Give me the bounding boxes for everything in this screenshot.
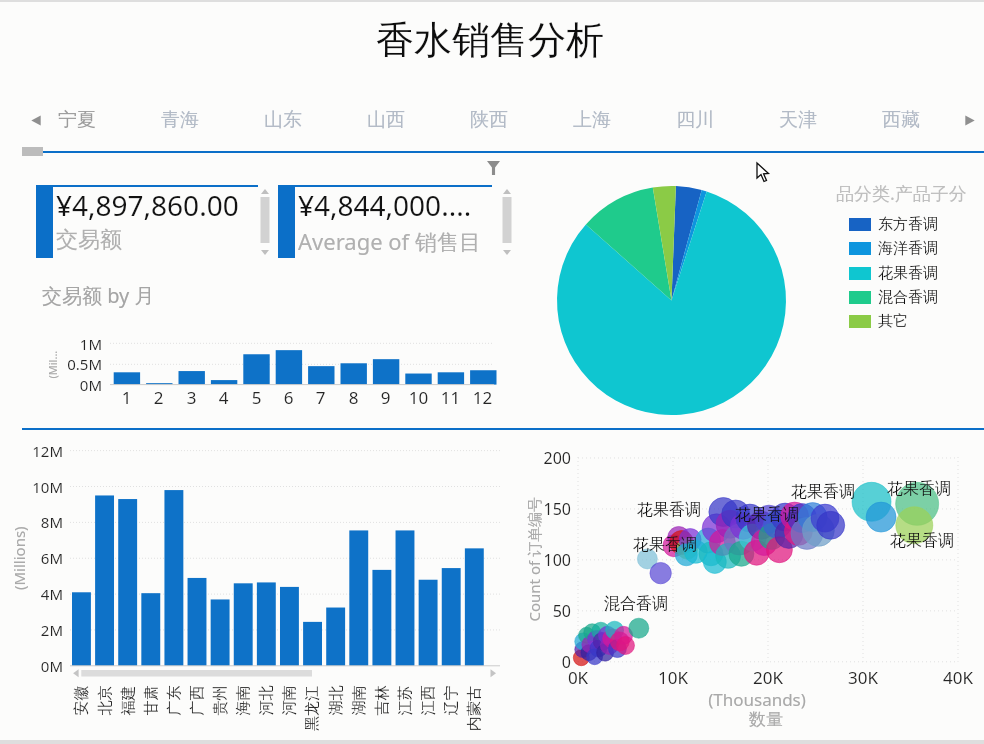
staticText: 0K — [548, 666, 608, 689]
button[interactable]: 山东 — [257, 104, 309, 136]
button[interactable]: ¥4,897,860.00 — [36, 185, 258, 258]
staticText: 50 — [511, 600, 571, 622]
staticText: 20K — [738, 666, 798, 689]
staticText: 12 — [466, 386, 499, 409]
staticText: 0M — [42, 375, 102, 395]
staticText: 交易额 by 月 — [42, 282, 155, 309]
button[interactable]: 山西 — [360, 104, 412, 136]
staticText: 湖南 — [349, 685, 368, 715]
staticText: 其它 — [878, 312, 908, 331]
staticText: 四川 — [676, 108, 714, 132]
staticText: 宁夏 — [58, 108, 96, 132]
staticText: 数量 — [686, 709, 846, 730]
staticText: 30K — [833, 666, 893, 689]
staticText: 4 — [207, 386, 240, 409]
staticText: 10K — [643, 666, 703, 689]
staticText: 广东 — [164, 685, 183, 715]
staticText: 北京 — [95, 685, 114, 715]
staticText: 1 — [110, 386, 143, 409]
staticText: 陕西 — [470, 108, 508, 132]
staticText: 山西 — [367, 108, 405, 132]
staticText: 4M — [3, 584, 63, 604]
staticText: 3 — [175, 386, 208, 409]
staticText: 8M — [3, 512, 63, 532]
staticText: 山东 — [264, 108, 302, 132]
staticText: 河南 — [279, 685, 298, 715]
staticText: 青海 — [161, 108, 199, 132]
staticText: Average of 销售目 — [298, 226, 481, 256]
staticText: 2 — [142, 386, 175, 409]
staticText: 11 — [434, 386, 467, 409]
staticText: 花果香调 — [637, 500, 701, 520]
staticText: 6M — [3, 548, 63, 568]
staticText: (Mil... — [44, 350, 59, 378]
staticText: 西藏 — [882, 108, 920, 132]
staticText: 花果香调 — [633, 535, 697, 555]
staticText: 甘肃 — [141, 685, 160, 715]
staticText: 黑龙江 — [303, 686, 322, 731]
staticText: 贵州 — [210, 685, 229, 715]
button[interactable]: 其它 — [849, 310, 908, 332]
staticText: 200 — [511, 447, 571, 469]
button[interactable]: 海洋香调 — [849, 237, 938, 259]
staticText: 江西 — [418, 685, 437, 715]
staticText: 湖北 — [326, 685, 345, 715]
staticText: 9 — [369, 386, 402, 409]
staticText: 0 — [511, 651, 571, 673]
button[interactable]: 西藏 — [875, 104, 927, 136]
staticText: 5 — [240, 386, 273, 409]
staticText: 6 — [272, 386, 305, 409]
button[interactable]: 天津 — [772, 104, 824, 136]
button[interactable]: Next — [963, 114, 976, 127]
staticText: 江苏 — [395, 685, 414, 715]
staticText: 7 — [304, 386, 337, 409]
staticText: ¥4,844,000.... — [298, 186, 472, 224]
staticText: (Millions) — [9, 526, 29, 590]
staticText: 花果香调 — [887, 479, 951, 499]
staticText: 混合香调 — [878, 288, 938, 307]
staticText: 河北 — [256, 685, 275, 715]
button[interactable]: Filter — [487, 161, 500, 175]
staticText: 12M — [3, 441, 63, 461]
button[interactable]: 花果香调 — [849, 262, 938, 284]
staticText: 交易额 — [56, 226, 122, 254]
staticText: 吉林 — [372, 685, 391, 715]
staticText: 10M — [3, 477, 63, 497]
button[interactable]: 陕西 — [463, 104, 515, 136]
staticText: 内蒙古 — [465, 686, 484, 731]
staticText: 海洋香调 — [878, 239, 938, 258]
staticText: 花果香调 — [890, 531, 954, 551]
staticText: 0M — [3, 656, 63, 676]
staticText: Count of 订单编号 — [523, 496, 543, 621]
button[interactable]: 上海 — [566, 104, 618, 136]
staticText: 花果香调 — [735, 505, 799, 525]
staticText: (Thousands) — [677, 688, 837, 711]
button[interactable]: ¥4,844,000.... — [278, 185, 492, 258]
staticText: 海南 — [233, 685, 252, 715]
button[interactable]: 混合香调 — [849, 286, 938, 308]
staticText: 150 — [511, 498, 571, 520]
staticText: 100 — [511, 549, 571, 571]
button[interactable]: 宁夏 — [51, 104, 103, 136]
staticText: 10 — [402, 386, 435, 409]
staticText: 花果香调 — [878, 264, 938, 283]
staticText: 混合香调 — [604, 594, 668, 614]
staticText: 品分类.产品子分 — [836, 181, 967, 206]
staticText: 广西 — [187, 685, 206, 715]
staticText: 1M — [42, 334, 102, 354]
staticText: 40K — [928, 666, 984, 689]
staticText: 0.5M — [42, 354, 102, 374]
staticText: 2M — [3, 620, 63, 640]
staticText: 上海 — [573, 108, 611, 132]
staticText: 福建 — [118, 685, 137, 715]
button[interactable]: 青海 — [154, 104, 206, 136]
staticText: 辽宁 — [441, 685, 460, 715]
staticText: 花果香调 — [791, 482, 855, 502]
button[interactable]: 东方香调 — [849, 213, 938, 235]
staticText: 安徽 — [71, 685, 90, 715]
button[interactable]: 四川 — [669, 104, 721, 136]
staticText: 东方香调 — [878, 215, 938, 234]
staticText: ¥4,897,860.00 — [56, 186, 239, 224]
staticText: 香水销售分析 — [376, 16, 604, 64]
button[interactable]: Previous — [30, 114, 43, 127]
